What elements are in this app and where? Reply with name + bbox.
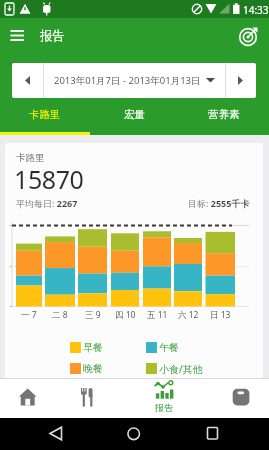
staticText: 早餐 [83, 341, 103, 354]
button[interactable] [179, 418, 269, 450]
staticText: 宏量 [124, 108, 145, 121]
staticText: 2013年01月7日 - 2013年01月13日 [54, 74, 201, 87]
button[interactable] [225, 63, 256, 98]
staticText: 营养素 [208, 108, 240, 121]
button[interactable] [232, 20, 264, 50]
staticText: 卡路里 [29, 108, 61, 121]
button[interactable]: 营养素 [179, 97, 269, 132]
staticText: 五 11 [147, 309, 168, 321]
button[interactable] [0, 378, 68, 418]
button[interactable] [68, 378, 135, 418]
button[interactable] [89, 418, 179, 450]
button[interactable] [0, 18, 36, 52]
staticText: 四 10 [115, 309, 136, 321]
staticText: 目标: 2555千卡 [188, 197, 250, 209]
staticText: 卡路里 [16, 152, 45, 164]
staticText: 报告 [40, 28, 65, 44]
button[interactable] [135, 378, 202, 418]
button[interactable] [0, 418, 89, 450]
staticText: 晚餐 [83, 362, 103, 375]
button[interactable]: 宏量 [89, 97, 179, 132]
staticText: 午餐 [159, 341, 179, 354]
staticText: 15870 [14, 162, 84, 196]
button[interactable] [202, 378, 269, 418]
staticText: 六 12 [178, 309, 199, 321]
staticText: 三 9 [85, 309, 101, 321]
button[interactable]: 卡路里 [0, 97, 89, 132]
staticText: 日 13 [210, 309, 231, 321]
staticText: 一 7 [21, 309, 37, 321]
staticText: 报告 [155, 402, 173, 413]
button[interactable] [12, 63, 43, 98]
button[interactable]: 2013年01月7日 - 2013年01月13日 [44, 63, 225, 98]
staticText: 平均每日: 2267 [16, 197, 78, 209]
staticText: 14:33 [243, 3, 269, 17]
staticText: 二 8 [52, 309, 68, 321]
staticText: 小食/其他 [159, 362, 203, 376]
